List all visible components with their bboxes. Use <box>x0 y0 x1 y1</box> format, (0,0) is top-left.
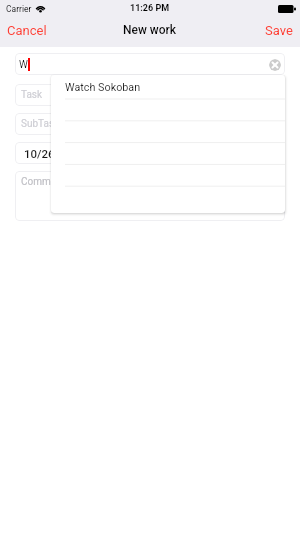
staticText: Cancel <box>7 23 47 38</box>
staticText: Task <box>21 89 43 101</box>
staticText: Comment <box>21 176 65 188</box>
staticText: Watch Sokoban <box>65 81 141 94</box>
staticText: Carrier <box>6 4 32 14</box>
button[interactable]: Save <box>265 20 293 40</box>
button[interactable] <box>51 121 285 143</box>
staticText: Save <box>265 23 293 38</box>
button[interactable]: Clear text <box>269 59 281 71</box>
button[interactable]: Comment <box>15 171 285 221</box>
button[interactable]: Task <box>15 84 285 106</box>
staticText: 10/26/2016 <box>24 147 86 160</box>
staticText: 11:26 PM <box>130 3 170 14</box>
button[interactable]: SubTask <box>15 113 285 135</box>
staticText: W <box>19 59 28 71</box>
staticText: SubTask <box>21 118 60 130</box>
button[interactable]: Watch Sokoban <box>51 75 285 99</box>
button[interactable]: Cancel <box>7 20 47 40</box>
staticText: New work <box>123 23 177 37</box>
button[interactable]: 10/26/2016 <box>15 142 285 164</box>
button[interactable]: W <box>15 53 285 75</box>
button[interactable] <box>51 143 285 165</box>
